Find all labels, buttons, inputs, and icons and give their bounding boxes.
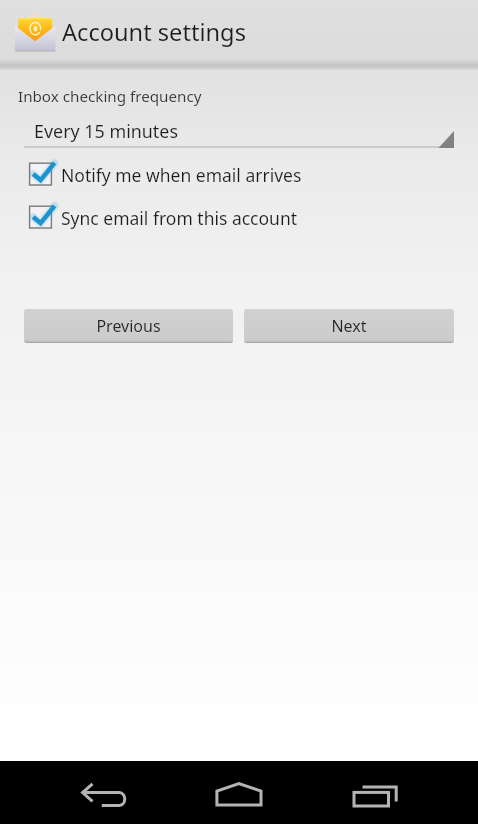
staticText: Sync email from this account <box>61 206 298 229</box>
button[interactable]: Sync email from this account <box>29 205 478 228</box>
staticText: Notify me when email arrives <box>61 163 302 186</box>
staticText: Previous <box>96 315 161 337</box>
button[interactable]: Every 15 minutes <box>24 115 454 148</box>
staticText: Account settings <box>62 16 246 48</box>
button[interactable]: Account settings <box>0 0 478 64</box>
button[interactable]: Notify me when email arrives <box>29 162 478 185</box>
staticText: Every 15 minutes <box>34 119 178 143</box>
staticText: Next <box>331 315 367 337</box>
button[interactable]: Previous <box>24 309 233 343</box>
button[interactable]: Recent apps <box>350 779 400 811</box>
button[interactable]: Home <box>213 779 265 811</box>
staticText: Inbox checking frequency <box>18 86 202 107</box>
button[interactable]: Next <box>244 309 454 343</box>
button[interactable]: Back <box>80 779 130 811</box>
